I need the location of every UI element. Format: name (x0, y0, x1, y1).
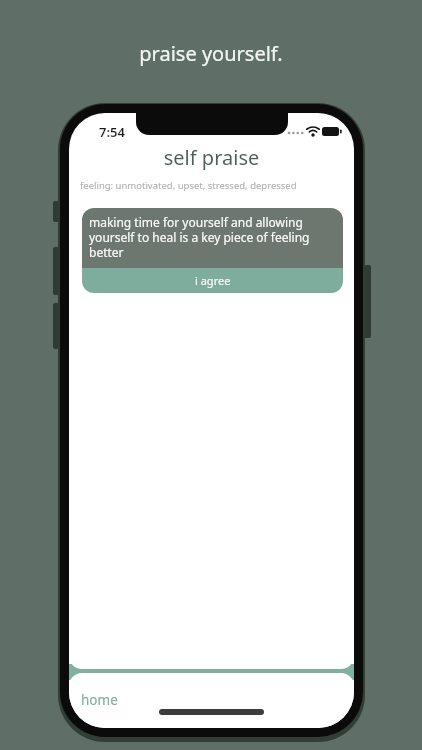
staticText: feeling: unmotivated, upset, stressed, d… (80, 179, 297, 192)
button[interactable]: i agree (82, 268, 343, 293)
staticText: i agree (195, 273, 231, 288)
staticText: making time for yourself and allowing yo… (89, 214, 310, 260)
staticText: praise yourself. (0, 40, 422, 67)
staticText: home (81, 691, 118, 709)
button[interactable]: home (69, 673, 354, 728)
staticText: self praise (69, 144, 354, 171)
staticText: 7:54 (99, 123, 125, 141)
